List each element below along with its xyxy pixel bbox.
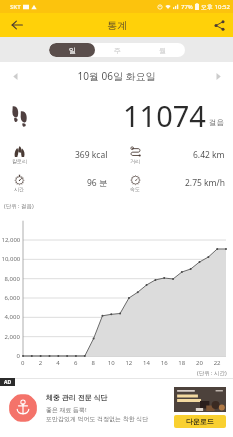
staticText: (단위 : 시간) [197, 369, 227, 377]
staticText: 통계 [107, 19, 127, 32]
staticText: 거리 [130, 158, 140, 164]
button[interactable]: Share [205, 13, 233, 37]
staticText: 주 [114, 46, 121, 55]
staticText: 96 분 [87, 177, 108, 189]
staticText: SKT [10, 3, 21, 11]
button[interactable]: 월 [140, 43, 185, 57]
button[interactable]: Next day [208, 66, 228, 86]
staticText: 11074 [123, 96, 206, 135]
staticText: 체중 관리 전문 식단 [46, 393, 108, 403]
staticText: AD [4, 379, 12, 386]
staticText: 다운로드 [186, 417, 214, 426]
staticText: 속도 [130, 186, 140, 192]
staticText: 월 [159, 46, 166, 55]
staticText: 2.75 km/h [185, 177, 225, 189]
staticText: 시간 [14, 186, 24, 192]
staticText: 369 kcal [75, 149, 108, 161]
staticText: 10월 06일 화요일 [25, 69, 208, 83]
staticText: 칼로리 [12, 158, 27, 164]
button[interactable]: 다운로드 [174, 415, 226, 428]
staticText: 77% [181, 3, 193, 11]
button[interactable]: Back [0, 13, 34, 37]
staticText: 오후 10:52 [201, 3, 230, 11]
staticText: 걸음 [209, 118, 224, 127]
staticText: 6.42 km [193, 149, 225, 161]
button[interactable]: 체중 관리 전문 식단 [0, 378, 233, 437]
button[interactable]: Previous day [5, 66, 25, 86]
staticText: 포만감있게 먹어도 걱정없는 착한 식단 [46, 415, 149, 423]
staticText: 일 [69, 46, 76, 55]
button[interactable]: 주 [95, 43, 140, 57]
button[interactable]: 일 [49, 43, 95, 57]
staticText: (단위 : 걸음) [4, 202, 34, 210]
staticText: 좋은 재료 듬뿍! [46, 406, 87, 414]
